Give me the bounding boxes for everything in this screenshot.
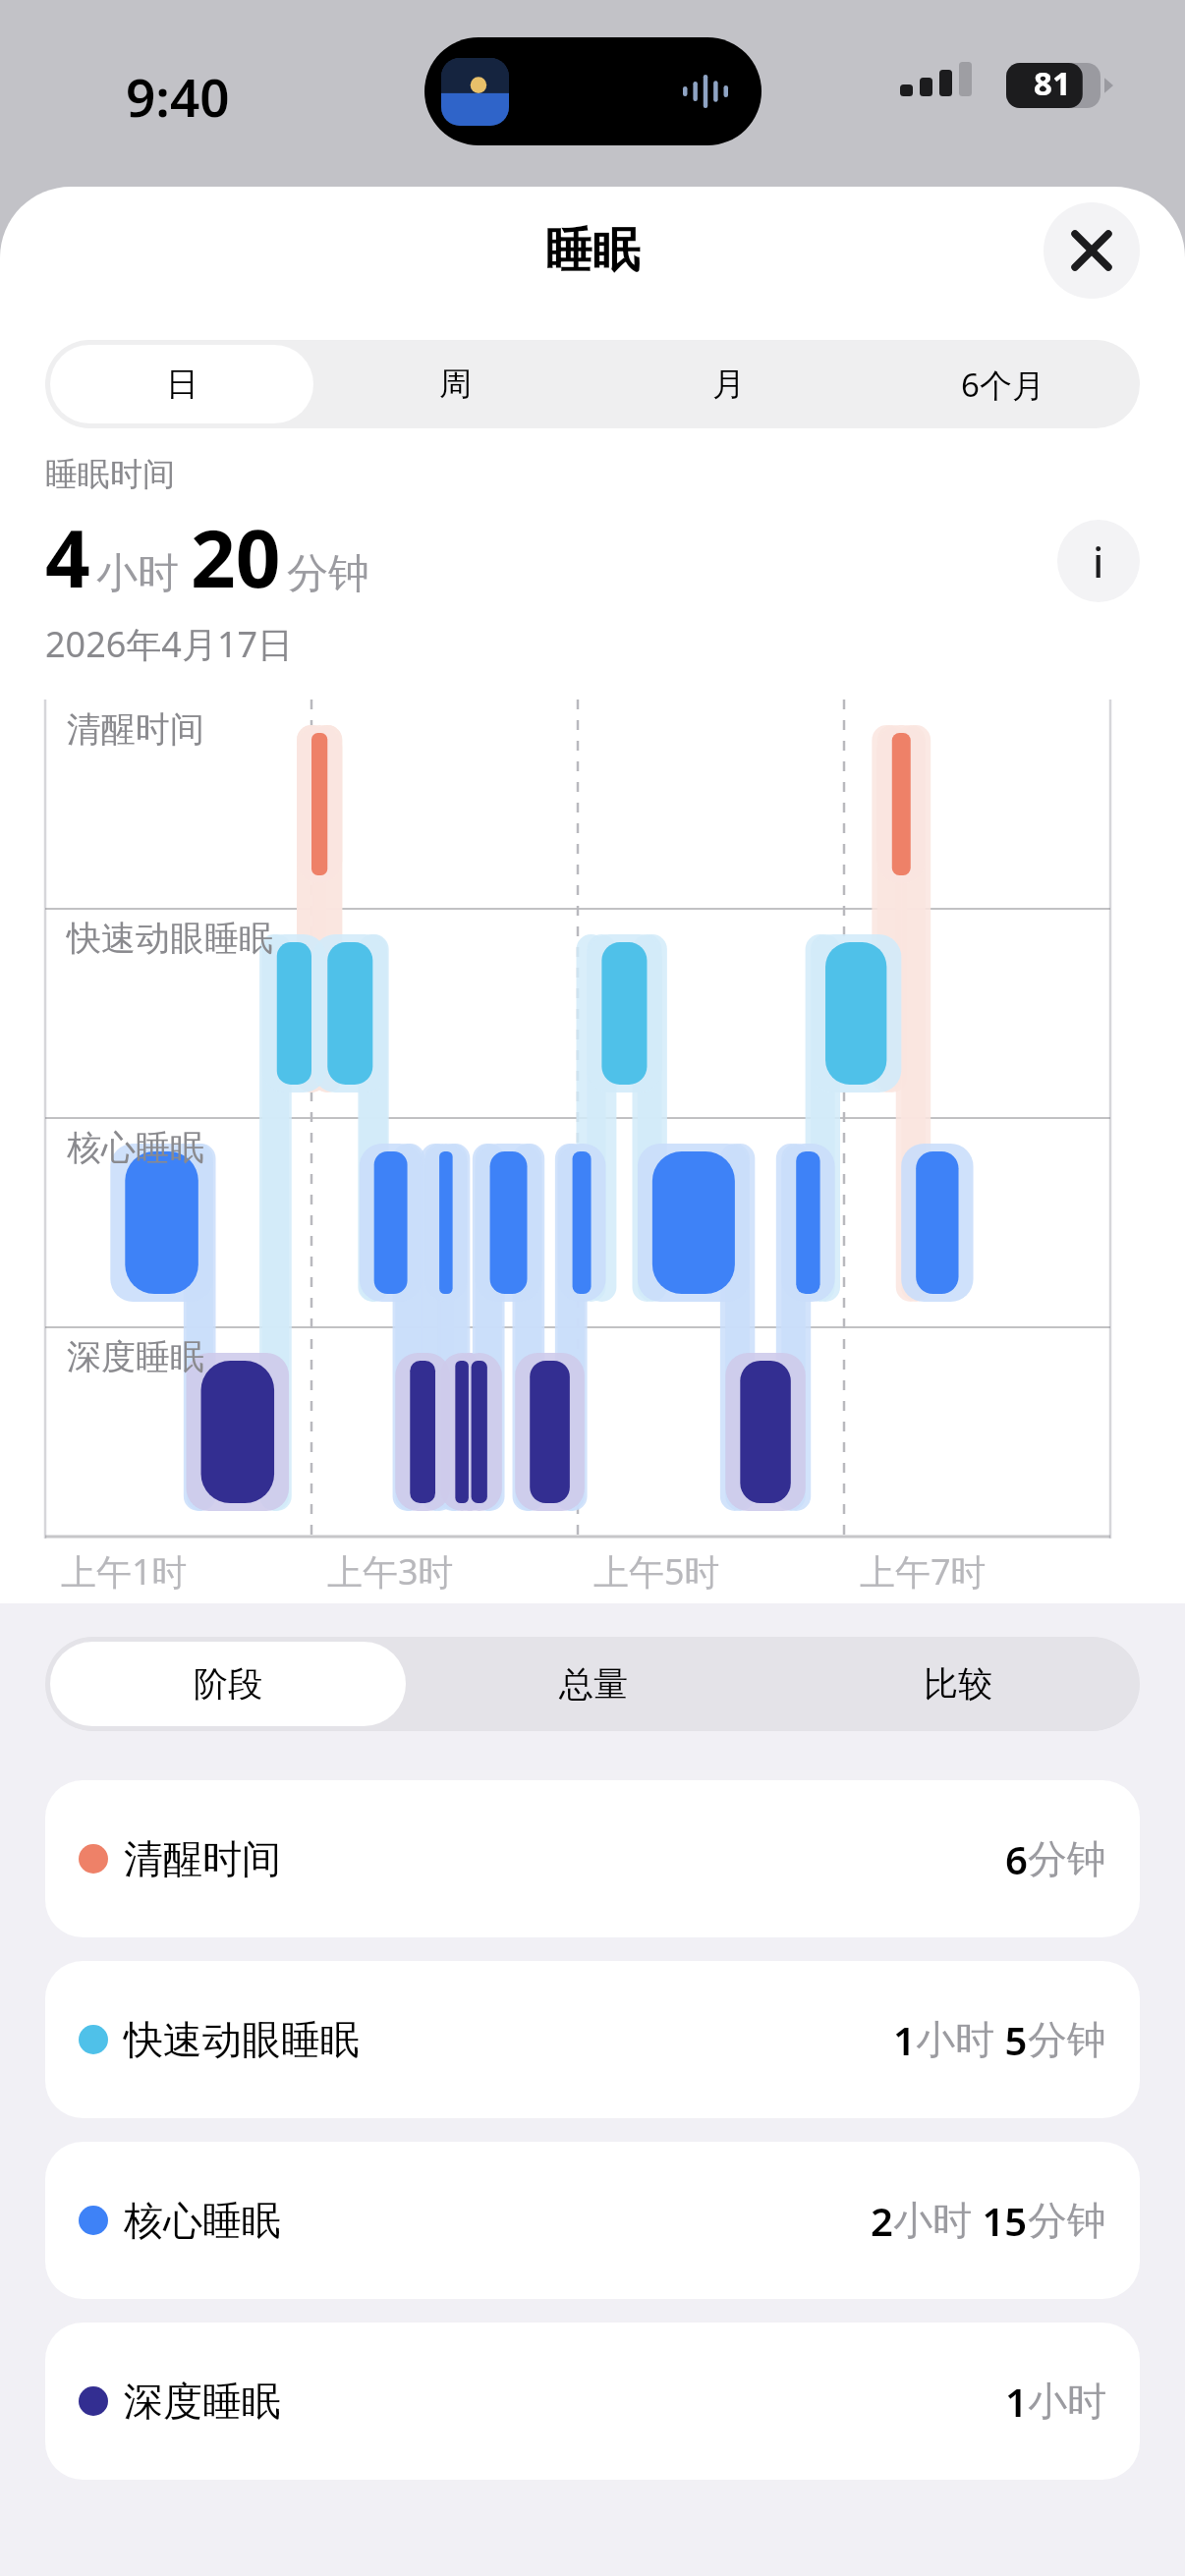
staticText: 周 bbox=[439, 364, 472, 405]
staticText: 4 bbox=[45, 503, 90, 610]
staticText: 阶段 bbox=[194, 1662, 262, 1706]
staticText: 睡眠 bbox=[545, 221, 640, 280]
staticText: 核心睡眠 bbox=[67, 1126, 204, 1169]
staticText: 分钟 bbox=[1028, 1834, 1106, 1883]
staticText: 20 bbox=[191, 503, 281, 610]
staticText: 核心睡眠 bbox=[124, 2196, 281, 2245]
staticText: 清醒时间 bbox=[67, 707, 204, 751]
staticText: 上午1时 bbox=[61, 1547, 188, 1596]
button[interactable]: 清醒时间 bbox=[45, 1780, 1140, 1937]
staticText: 日 bbox=[166, 364, 198, 405]
staticText: 2 bbox=[871, 2194, 893, 2247]
staticText: 上午7时 bbox=[860, 1547, 987, 1596]
staticText: 快速动眼睡眠 bbox=[124, 2015, 360, 2064]
button[interactable]: 快速动眼睡眠 bbox=[45, 1961, 1140, 2118]
button[interactable]: 阶段 bbox=[50, 1642, 406, 1726]
staticText: 6 bbox=[1005, 1832, 1028, 1885]
staticText: 9:40 bbox=[126, 61, 230, 132]
staticText: 深度睡眠 bbox=[67, 1335, 204, 1378]
staticText: 分钟 bbox=[287, 548, 369, 600]
staticText: 81 bbox=[1034, 61, 1071, 105]
staticText: 深度睡眠 bbox=[124, 2377, 281, 2426]
staticText: 睡眠时间 bbox=[45, 454, 175, 495]
button[interactable]: 总量 bbox=[416, 1642, 770, 1726]
staticText: 小时 bbox=[893, 2196, 972, 2245]
staticText: 月 bbox=[712, 364, 745, 405]
staticText: 快速动眼睡眠 bbox=[67, 917, 273, 960]
button[interactable]: 关闭 bbox=[1044, 202, 1140, 299]
staticText: 小时 bbox=[1028, 2377, 1106, 2426]
button[interactable]: 月 bbox=[596, 345, 861, 423]
staticText: 1 bbox=[1005, 2375, 1028, 2428]
staticText: 比较 bbox=[924, 1662, 992, 1706]
staticText: 上午5时 bbox=[593, 1547, 720, 1596]
staticText: 5 bbox=[994, 2013, 1028, 2066]
staticText: 小时 bbox=[916, 2015, 994, 2064]
button[interactable]: 6个月 bbox=[871, 345, 1135, 423]
staticText: 6个月 bbox=[961, 363, 1044, 407]
staticText: 小时 bbox=[96, 548, 179, 600]
staticText: 总量 bbox=[559, 1662, 628, 1706]
staticText: 2026年4月17日 bbox=[45, 620, 294, 668]
staticText: 1 bbox=[893, 2013, 916, 2066]
staticText: 上午3时 bbox=[327, 1547, 454, 1596]
staticText: i bbox=[1093, 533, 1104, 589]
staticText: 15 bbox=[972, 2194, 1028, 2247]
button[interactable]: 日 bbox=[50, 345, 313, 423]
button[interactable]: 深度睡眠 bbox=[45, 2323, 1140, 2480]
button[interactable]: 比较 bbox=[780, 1642, 1135, 1726]
button[interactable]: 核心睡眠 bbox=[45, 2142, 1140, 2299]
staticText: 分钟 bbox=[1028, 2196, 1106, 2245]
staticText: 清醒时间 bbox=[124, 1834, 281, 1883]
button[interactable]: 周 bbox=[323, 345, 587, 423]
button[interactable]: 信息 bbox=[1057, 520, 1140, 602]
staticText: 分钟 bbox=[1028, 2015, 1106, 2064]
